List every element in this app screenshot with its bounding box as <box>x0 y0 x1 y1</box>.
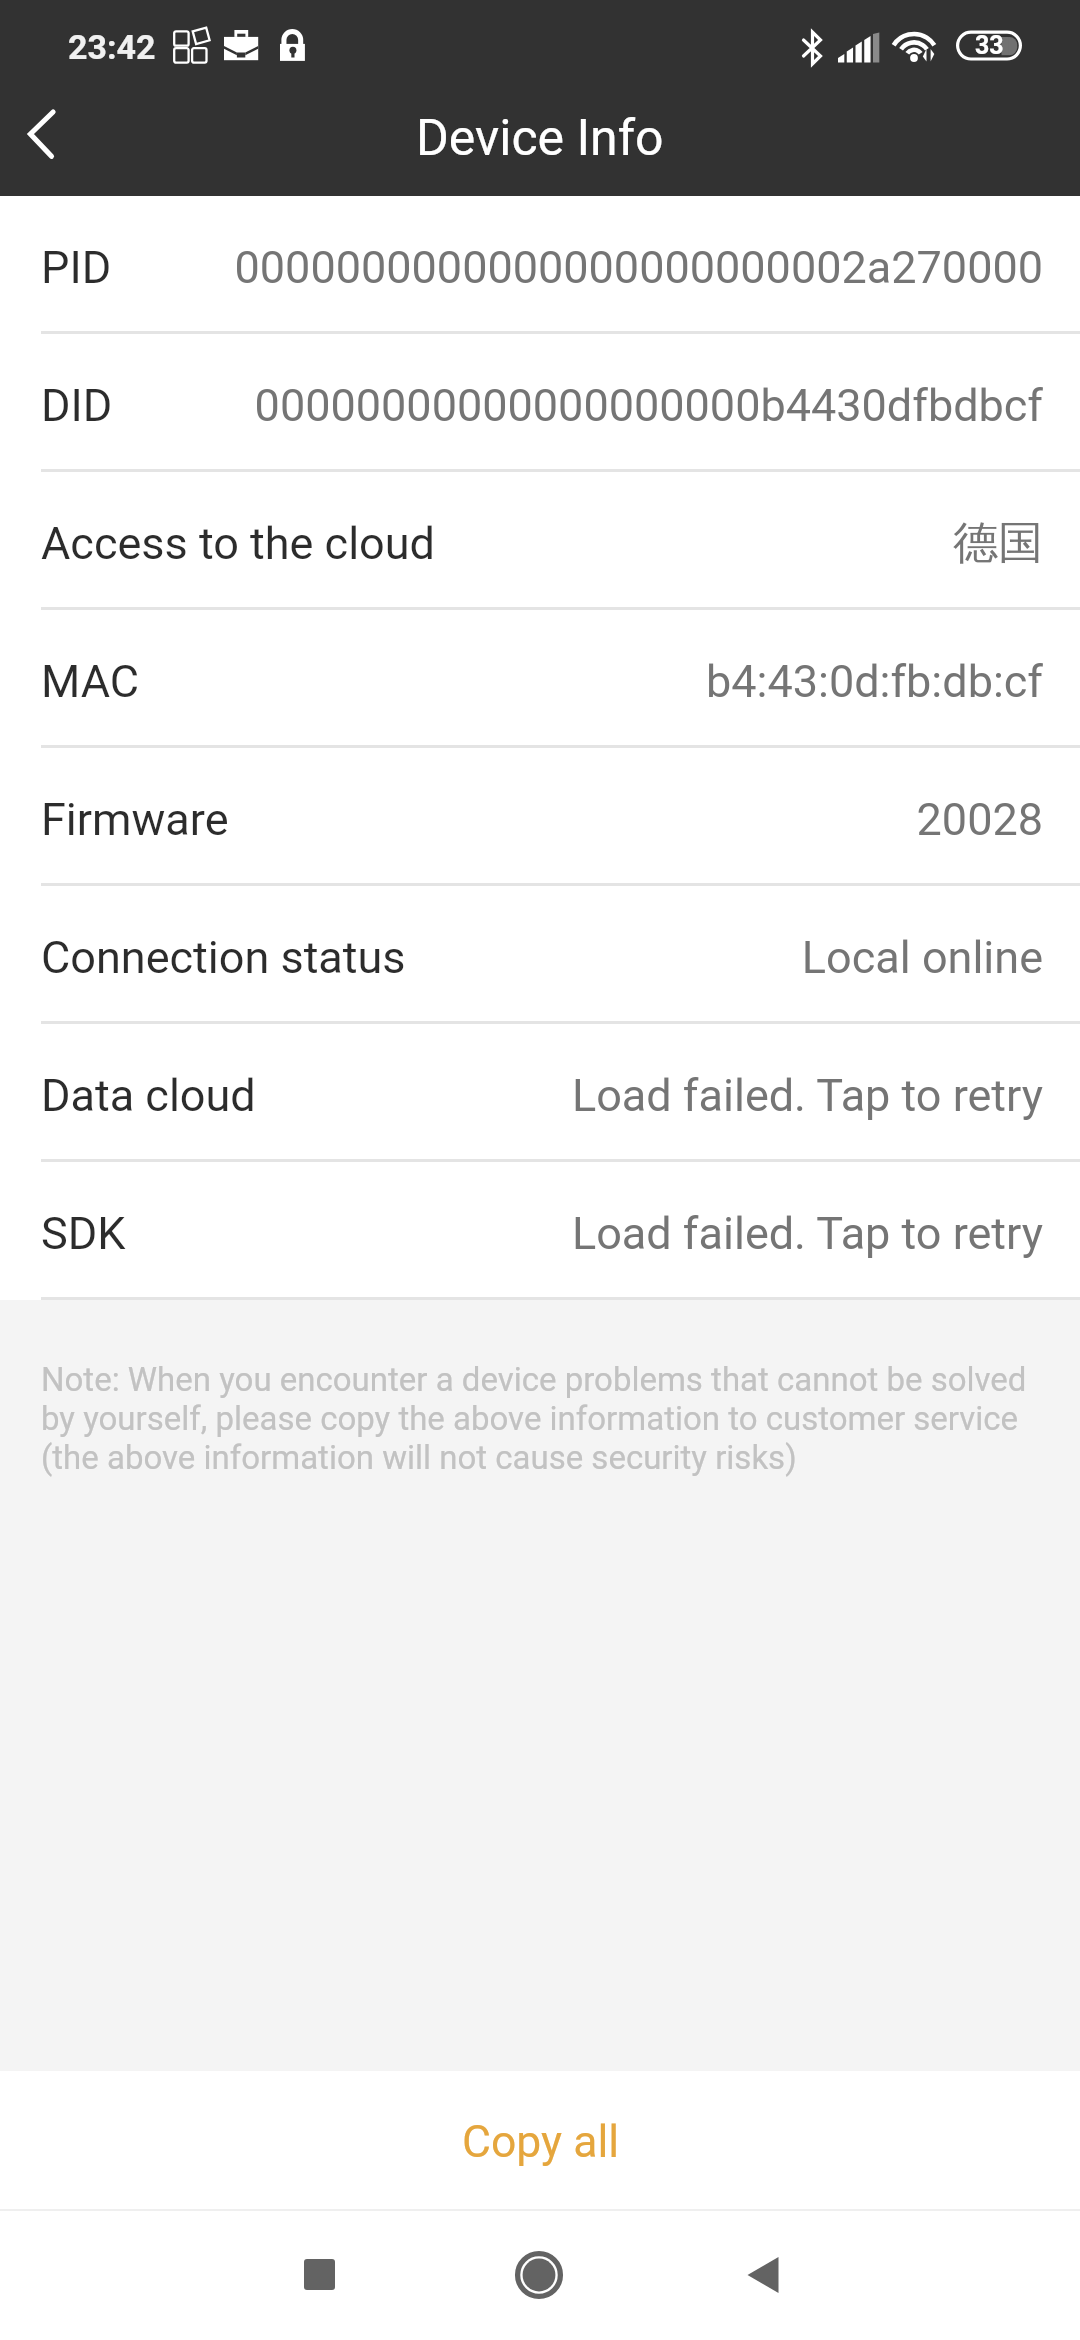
button[interactable]: PID <box>0 196 1080 334</box>
staticText: 23:42 <box>68 27 156 67</box>
staticText: DID <box>41 379 113 432</box>
staticText: SDK <box>41 1207 126 1260</box>
button[interactable]: Back <box>0 96 96 196</box>
staticText: Data cloud <box>41 1069 256 1122</box>
button[interactable]: Access to the cloud <box>0 472 1080 610</box>
staticText: 德国 <box>447 515 1043 572</box>
button[interactable]: Copy all <box>0 2071 1080 2209</box>
button[interactable]: Firmware <box>0 748 1080 886</box>
staticText: 20028 <box>241 793 1043 846</box>
staticText: Firmware <box>41 793 229 846</box>
button[interactable]: Back <box>703 2209 823 2340</box>
staticText: 0000000000000000000000002a270000 <box>124 241 1043 294</box>
staticText: Local online <box>418 931 1043 984</box>
staticText: Device Info <box>416 109 664 168</box>
staticText: 00000000000000000000b4430dfbdbcf <box>125 379 1043 432</box>
button[interactable]: DID <box>0 334 1080 472</box>
staticText: 33 <box>975 31 1004 60</box>
button[interactable]: Home <box>479 2209 599 2340</box>
staticText: Note: When you encounter a device proble… <box>41 1360 1027 1477</box>
button[interactable]: Recents <box>259 2209 379 2340</box>
staticText: Connection status <box>41 931 406 984</box>
staticText: Load failed. Tap to retry <box>268 1069 1043 1122</box>
button[interactable]: MAC <box>0 610 1080 748</box>
button[interactable]: Connection status <box>0 886 1080 1024</box>
staticText: PID <box>41 241 112 294</box>
staticText: b4:43:0d:fb:db:cf <box>152 655 1043 708</box>
staticText: Access to the cloud <box>41 517 435 570</box>
staticText: Load failed. Tap to retry <box>138 1207 1043 1260</box>
button[interactable]: SDK <box>0 1162 1080 1300</box>
staticText: MAC <box>41 655 140 708</box>
staticText: Copy all <box>462 2116 620 2168</box>
button[interactable]: Data cloud <box>0 1024 1080 1162</box>
